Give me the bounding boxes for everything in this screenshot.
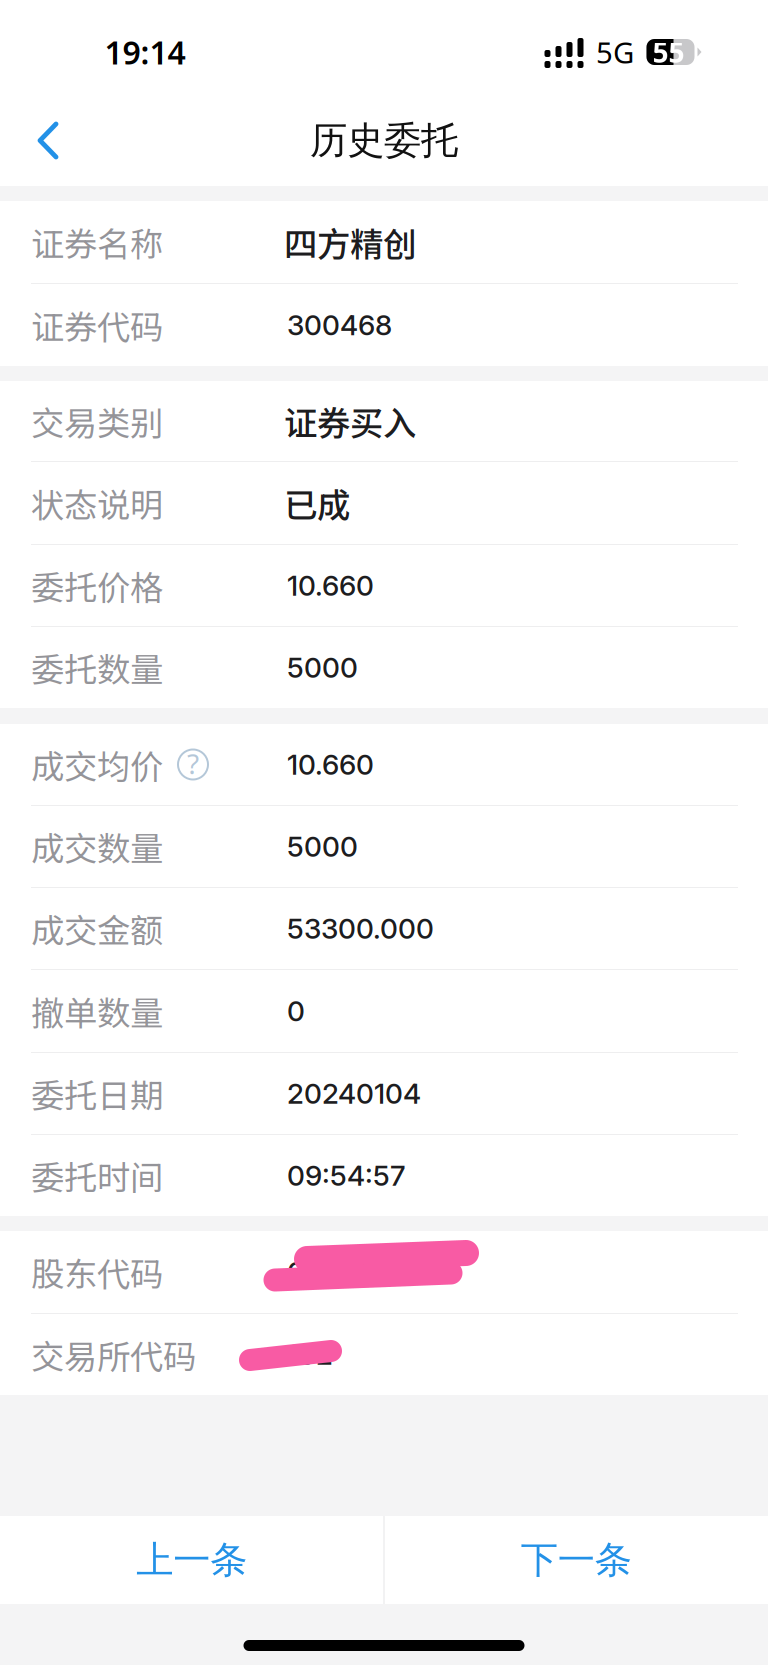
staticText: 19:14 — [104, 31, 185, 73]
staticText: 0 — [287, 994, 305, 1028]
staticText: 20240104 — [287, 1077, 421, 1110]
staticText: 撤单数量 — [31, 987, 163, 1035]
staticText: 已成 — [284, 479, 350, 527]
staticText: 102 — [287, 1338, 333, 1371]
staticText: 下一条 — [521, 1537, 632, 1583]
staticText: 成交金额 — [31, 904, 163, 953]
staticText: 委托时间 — [31, 1151, 163, 1200]
button[interactable]: Back — [0, 95, 96, 186]
staticText: 10.660 — [287, 748, 374, 781]
staticText: 交易类别 — [31, 397, 163, 445]
staticText: 委托日期 — [31, 1069, 163, 1118]
staticText: 0615330500 — [287, 1255, 455, 1289]
staticText: 委托数量 — [31, 643, 163, 692]
staticText: 55 — [652, 33, 684, 71]
staticText: 状态说明 — [31, 479, 163, 527]
staticText: 四方精创 — [284, 218, 416, 266]
staticText: 300468 — [287, 308, 392, 342]
staticText: 证券名称 — [31, 218, 163, 266]
staticText: 上一条 — [136, 1537, 247, 1583]
staticText: 证券代码 — [31, 301, 163, 349]
staticText: 委托价格 — [31, 561, 163, 610]
staticText: 股东代码 — [31, 1248, 163, 1296]
staticText: 5G — [596, 32, 634, 71]
staticText: 5000 — [287, 651, 358, 684]
staticText: 交易所代码 — [31, 1330, 196, 1379]
staticText: 53300.000 — [287, 912, 434, 945]
button[interactable]: 下一条 — [384, 1516, 768, 1604]
staticText: 历史委托 — [310, 118, 458, 163]
staticText: 10.660 — [287, 569, 374, 602]
staticText: 成交数量 — [31, 822, 163, 871]
staticText: 09:54:57 — [287, 1159, 406, 1192]
staticText: 5000 — [287, 830, 358, 863]
staticText: 成交均价 — [31, 740, 163, 789]
staticText: 证券买入 — [284, 397, 416, 445]
button[interactable]: 上一条 — [0, 1516, 383, 1604]
staticText: ? — [187, 745, 199, 782]
